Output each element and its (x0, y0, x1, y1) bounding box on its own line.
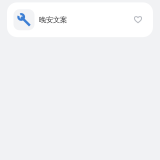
staticText: 晚安文案 (39, 15, 67, 24)
button[interactable]: 晚安文案 (7, 2, 153, 37)
